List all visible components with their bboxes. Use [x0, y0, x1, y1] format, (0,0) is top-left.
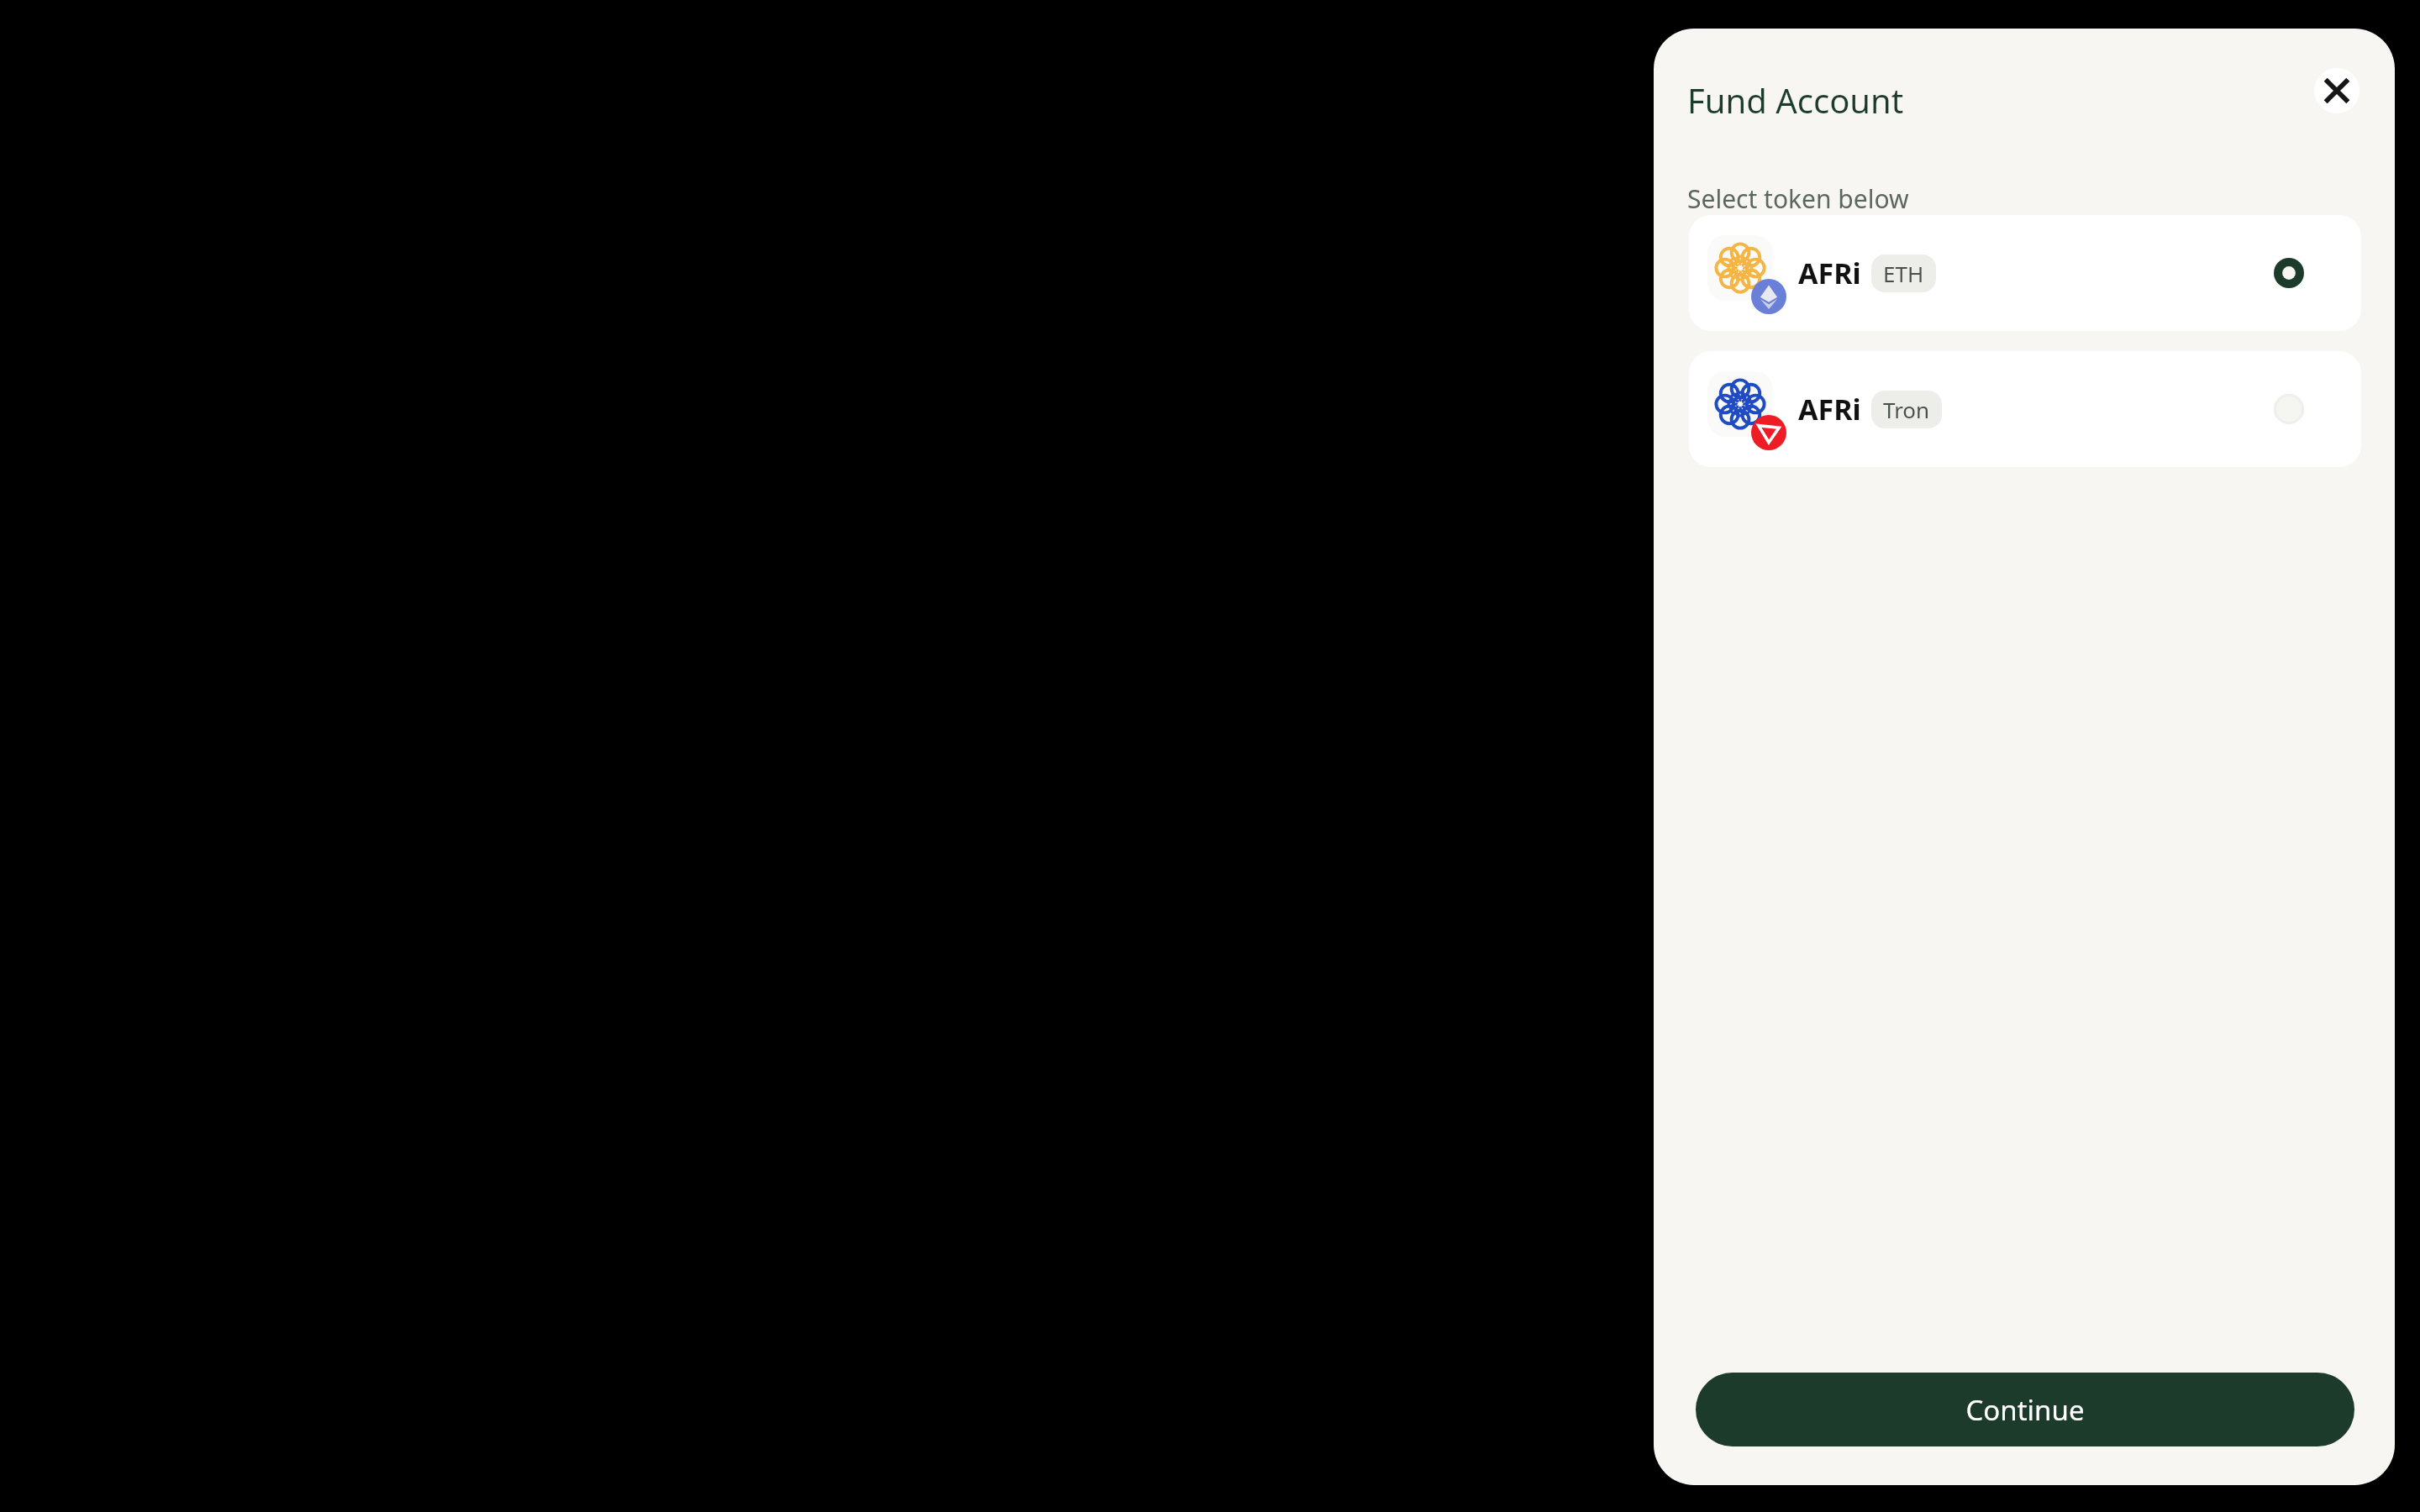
staticText: Continue: [1965, 1391, 2085, 1429]
staticText: Select token below: [1687, 181, 1909, 216]
button[interactable]: AFRi: [1689, 215, 2361, 331]
staticText: AFRi: [1798, 254, 1861, 292]
staticText: AFRi: [1798, 390, 1861, 428]
staticText: Tron: [1883, 395, 1930, 424]
button[interactable]: Select AFRi ETH: [2274, 258, 2304, 288]
button[interactable]: Close: [2314, 68, 2359, 113]
button[interactable]: Continue: [1696, 1373, 2354, 1446]
button[interactable]: AFRi: [1689, 351, 2361, 467]
button[interactable]: Select AFRi Tron: [2274, 394, 2304, 424]
staticText: ETH: [1883, 259, 1924, 288]
staticText: Fund Account: [1687, 77, 1904, 123]
